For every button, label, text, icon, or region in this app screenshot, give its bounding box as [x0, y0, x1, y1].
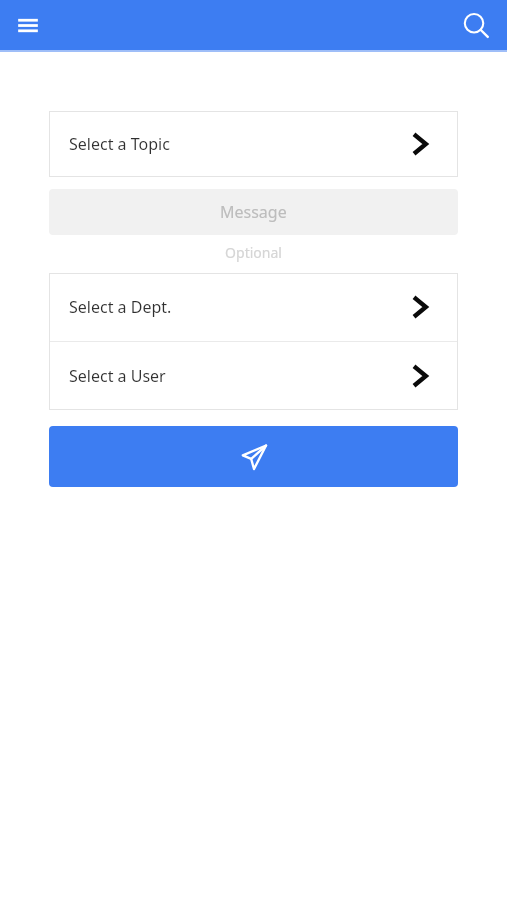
button[interactable]: Menu	[8, 6, 48, 46]
staticText: Optional	[49, 243, 458, 262]
button[interactable]: Send	[49, 426, 458, 487]
staticText: Select a Dept.	[69, 296, 172, 318]
staticText: Message	[220, 201, 287, 223]
button[interactable]: Select a Dept.	[49, 273, 458, 341]
button[interactable]: Select a User	[49, 342, 458, 410]
button[interactable]: Message	[49, 189, 458, 235]
staticText: Select a Topic	[69, 133, 170, 155]
staticText: Select a User	[69, 365, 166, 387]
button[interactable]: Search	[455, 5, 497, 47]
button[interactable]: Select a Topic	[49, 111, 458, 177]
